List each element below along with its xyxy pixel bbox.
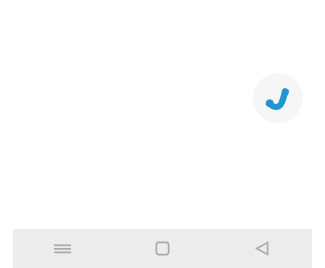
button[interactable]: Call (253, 73, 303, 123)
button[interactable]: Back (212, 229, 312, 268)
button[interactable]: Menu (13, 229, 112, 268)
button[interactable]: Home (112, 229, 212, 268)
